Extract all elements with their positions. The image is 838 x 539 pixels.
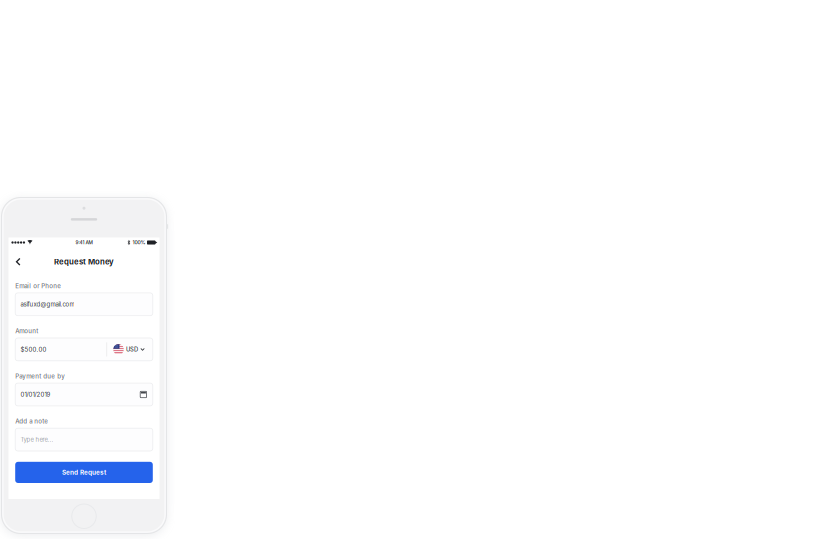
staticText: 100% bbox=[133, 239, 146, 245]
button[interactable]: Type here... bbox=[15, 428, 153, 451]
staticText: Add a note bbox=[15, 418, 48, 425]
staticText: Send Request bbox=[62, 468, 106, 476]
staticText: Email or Phone bbox=[15, 282, 61, 290]
staticText: 01/01/2019 bbox=[20, 391, 50, 398]
staticText: asifuxd@gmail.com bbox=[20, 301, 74, 308]
staticText: Request Money bbox=[54, 257, 114, 266]
staticText: Amount bbox=[15, 327, 38, 335]
button[interactable]: 01/01/2019 bbox=[15, 383, 153, 406]
staticText: USD bbox=[126, 346, 138, 353]
button[interactable]: USD bbox=[107, 338, 153, 361]
staticText: Type here... bbox=[20, 436, 53, 443]
button[interactable]: asifuxd@gmail.com bbox=[15, 293, 153, 316]
staticText: $500.00 bbox=[20, 346, 46, 353]
staticText: Payment due by bbox=[15, 372, 65, 380]
button[interactable]: Back bbox=[13, 255, 24, 268]
button[interactable]: Send Request bbox=[15, 462, 153, 483]
staticText: 9:41 AM bbox=[75, 240, 92, 245]
